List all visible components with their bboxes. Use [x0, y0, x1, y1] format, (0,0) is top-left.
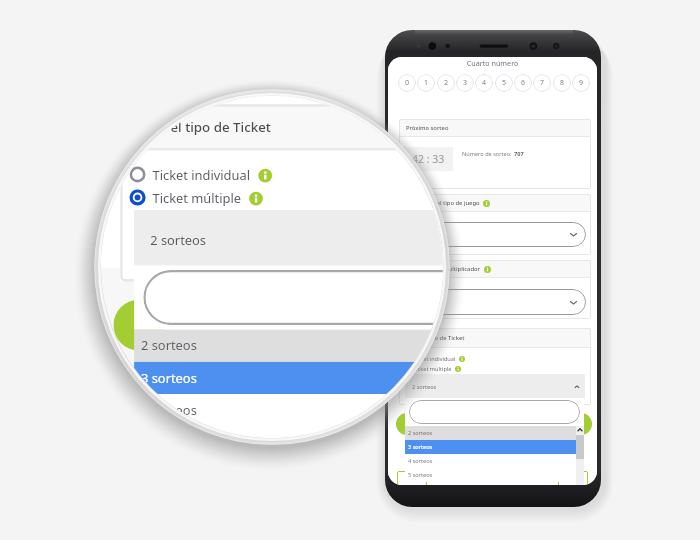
button[interactable]: 3 sorteos — [141, 362, 443, 394]
staticText: 5 sorteos — [141, 433, 198, 438]
button[interactable]: 3 — [456, 74, 474, 92]
button[interactable]: Buscar — [143, 270, 443, 325]
staticText: 3 — [463, 78, 468, 88]
button[interactable]: 2 sorteos — [150, 210, 443, 268]
button[interactable]: 2 sorteos — [412, 374, 580, 399]
button[interactable]: Siguiente — [570, 413, 592, 435]
staticText: 1 — [424, 78, 429, 88]
button[interactable]: Ticket individual — [403, 354, 465, 363]
staticText: 2 sorteos — [412, 383, 437, 391]
staticText: Número de sorteo: — [462, 150, 514, 158]
button[interactable]: Anterior — [396, 413, 418, 435]
staticText: Ticket individual — [413, 355, 456, 363]
staticText: 5 sorteos — [408, 471, 433, 479]
button[interactable]: Ticket múltiple — [403, 364, 461, 373]
button[interactable]: Ticket múltiple — [129, 187, 263, 208]
staticText: Elige el tipo de Ticket — [406, 334, 465, 342]
button[interactable]: 5 — [495, 74, 513, 92]
staticText: Cuarto número — [388, 58, 597, 68]
button[interactable]: Anterior — [113, 300, 164, 350]
button[interactable]: 7 — [533, 74, 551, 92]
staticText: 8 — [560, 78, 565, 88]
button[interactable]: 4 — [475, 74, 493, 92]
button[interactable]: Limpiar — [397, 471, 427, 485]
staticText: 0 — [405, 78, 410, 88]
staticText: 6 — [521, 78, 526, 88]
button[interactable]: 2 sorteos — [141, 330, 443, 362]
button[interactable]: 5 sorteos — [408, 468, 584, 482]
button[interactable]: 5 sorteos — [141, 426, 443, 438]
button[interactable]: T — [415, 222, 578, 247]
staticText: 5 — [502, 78, 507, 88]
staticText: Próximo sorteo — [406, 124, 449, 132]
button[interactable]: Aceptar — [558, 471, 588, 485]
staticText: 4 — [482, 78, 487, 88]
staticText: 707 — [514, 150, 524, 158]
button[interactable]: Buscar — [409, 400, 580, 424]
button[interactable]: 6 — [514, 74, 532, 92]
button[interactable]: 8 — [553, 74, 571, 92]
staticText: 7 — [540, 78, 545, 88]
button[interactable]: Limpiar — [116, 433, 185, 438]
staticText: Ticket múltiple — [152, 189, 242, 208]
staticText: 3 sorteos — [408, 443, 433, 451]
staticText: 9 — [579, 78, 584, 88]
staticText: 2 sorteos — [408, 429, 433, 437]
staticText: 4 sorteos — [141, 401, 198, 419]
staticText: 3 sorteos — [141, 369, 198, 387]
button[interactable]: 4 sorteos — [408, 454, 584, 468]
staticText: 2 sorteos — [150, 231, 208, 249]
button[interactable]: 1 — [417, 74, 435, 92]
button[interactable]: 9 — [572, 74, 590, 92]
staticText: 42 : 33 — [412, 152, 445, 166]
button[interactable] — [415, 289, 578, 315]
staticText: Elige el tipo de Ticket — [136, 118, 272, 136]
button[interactable]: 2 — [437, 74, 455, 92]
staticText: 2 sorteos — [141, 337, 198, 355]
staticText: Selecciona el multiplicador — [406, 265, 481, 273]
staticText: Ticket individual — [152, 166, 251, 185]
button[interactable]: 0 — [398, 74, 416, 92]
staticText: 2 — [444, 78, 449, 88]
button[interactable]: 4 sorteos — [141, 394, 443, 426]
button[interactable]: Ticket individual — [129, 164, 272, 185]
button[interactable]: 2 sorteos — [408, 426, 584, 440]
button[interactable]: 3 sorteos — [408, 440, 584, 454]
staticText: Selecciona el tipo de juego — [406, 199, 480, 207]
staticText: Ticket múltiple — [413, 365, 452, 373]
staticText: 4 sorteos — [408, 457, 433, 465]
